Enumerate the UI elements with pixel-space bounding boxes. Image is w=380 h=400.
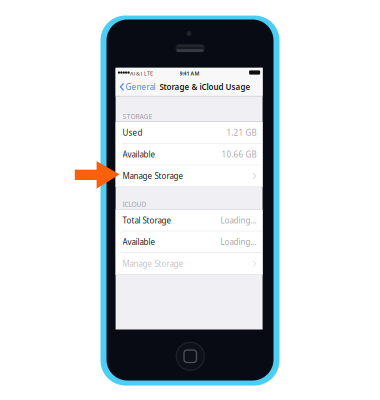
staticText: Loading... [221, 215, 257, 226]
staticText: LTE [144, 70, 153, 77]
button[interactable]: Total Storage [116, 210, 263, 231]
button[interactable]: Home [176, 342, 205, 371]
staticText: Available [123, 149, 156, 160]
staticText: Used [123, 127, 143, 138]
staticText: AT&T [130, 70, 143, 77]
staticText: ICLOUD [123, 200, 147, 208]
staticText: 10.66 GB [222, 149, 257, 160]
staticText: 1.21 GB [227, 127, 257, 138]
button[interactable]: Available [116, 144, 263, 165]
button[interactable]: Manage Storage [116, 165, 263, 187]
staticText: Loading... [221, 237, 257, 247]
button[interactable]: Manage Storage [116, 253, 263, 275]
staticText: 9:41 AM [180, 70, 200, 77]
staticText: STORAGE [123, 112, 153, 121]
staticText: Total Storage [123, 215, 172, 226]
button[interactable]: Used [116, 122, 263, 144]
staticText: Storage & iCloud Usage [159, 81, 250, 92]
staticText: Available [123, 237, 156, 247]
staticText: Manage Storage [123, 171, 184, 181]
staticText: Manage Storage [123, 258, 184, 269]
staticText: General [125, 81, 155, 92]
button[interactable]: General [116, 81, 155, 92]
button[interactable]: Available [116, 231, 263, 253]
